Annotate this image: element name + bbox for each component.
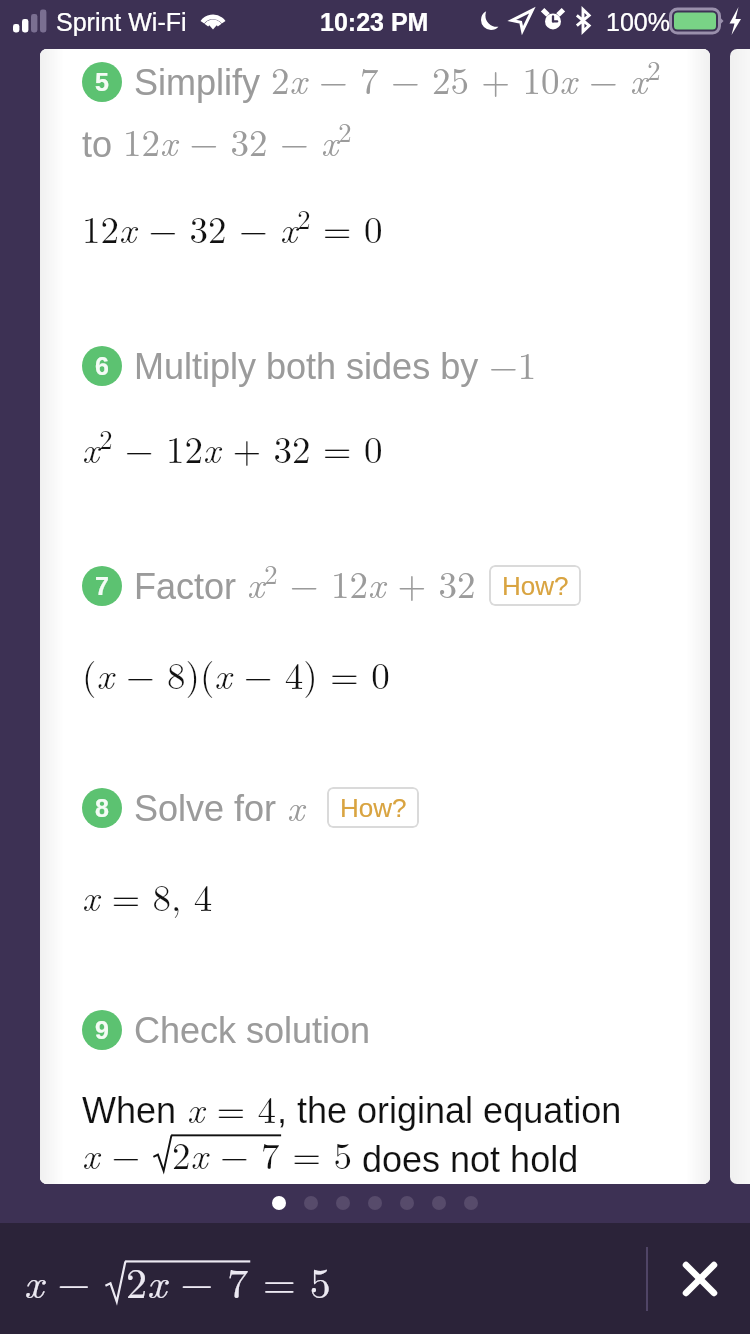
staticText: to [82, 124, 123, 164]
staticText: 9 [95, 1016, 109, 1044]
staticText: x − [82, 1127, 153, 1179]
staticText: 6 [95, 352, 109, 380]
button[interactable] [400, 1196, 414, 1210]
staticText: How? [340, 793, 407, 822]
button[interactable] [304, 1196, 318, 1210]
staticText: (x − 8)(x − 4) = 0 [82, 647, 390, 699]
button[interactable]: How? [327, 787, 419, 828]
staticText: x − [24, 1251, 105, 1311]
button[interactable]: How? [489, 565, 581, 606]
staticText: 7 [95, 572, 109, 600]
staticText: 2x − 7 − 25 + 10x − x2 [271, 50, 661, 105]
button[interactable] [272, 1196, 286, 1210]
button[interactable]: 5 [40, 49, 710, 1184]
button[interactable] [432, 1196, 446, 1210]
staticText: 2x − 7 [126, 1251, 249, 1311]
button[interactable] [336, 1196, 350, 1210]
staticText: x2 − 12x + 32 = 0 [82, 419, 383, 474]
staticText: = 5 [280, 1127, 352, 1179]
staticText: x [287, 779, 305, 831]
button[interactable]: Close [673, 1252, 727, 1306]
staticText: When [82, 1090, 187, 1130]
staticText: −1 [489, 337, 537, 389]
staticText: 100% [606, 8, 670, 36]
staticText: , the original equation [277, 1090, 622, 1130]
staticText: Solve for [134, 788, 287, 828]
staticText: 12x − 32 − x2 = 0 [82, 199, 383, 254]
staticText: Sprint Wi-Fi [56, 8, 187, 36]
staticText: Check solution [134, 1010, 371, 1050]
staticText: 12x − 32 − x2 [123, 112, 352, 167]
staticText: = 5 [249, 1251, 331, 1311]
staticText: How? [502, 571, 569, 600]
staticText: x = 8, 4 [82, 869, 213, 921]
staticText: does not hold [352, 1139, 579, 1179]
staticText: Factor [134, 566, 247, 606]
staticText: Simplify [134, 62, 271, 102]
button[interactable] [464, 1196, 478, 1210]
staticText: 5 [95, 68, 109, 96]
staticText: x2 − 12x + 32 [247, 554, 476, 609]
button[interactable] [368, 1196, 382, 1210]
staticText: x = 4 [187, 1081, 277, 1133]
staticText: 8 [95, 794, 109, 822]
staticText: Multiply both sides by [134, 346, 489, 386]
staticText: 10:23 PM [320, 8, 429, 36]
staticText: 2x − 7 [172, 1127, 280, 1179]
